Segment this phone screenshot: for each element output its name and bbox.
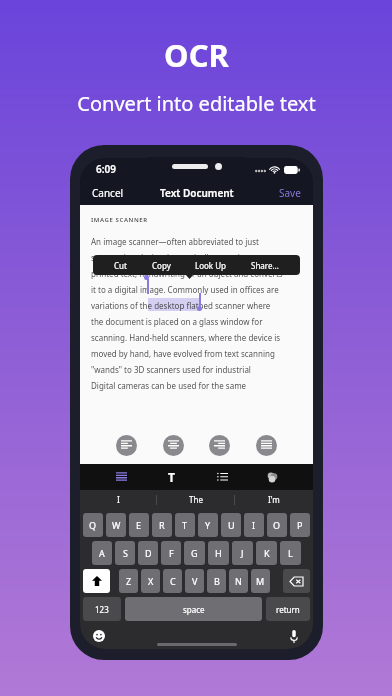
staticText: Z xyxy=(126,575,132,587)
staticText: M xyxy=(256,575,265,587)
button[interactable]: I xyxy=(244,513,264,537)
staticText: 6:09 xyxy=(96,162,116,176)
staticText: P xyxy=(297,519,303,531)
staticText: "wands" to 3D scanners used for industri… xyxy=(91,364,251,375)
button[interactable]: S xyxy=(115,541,135,565)
staticText: I'm xyxy=(268,494,280,505)
button[interactable]: H xyxy=(208,541,229,565)
button[interactable]: E xyxy=(129,513,149,537)
staticText: it to a digital image. Commonly used in … xyxy=(91,284,279,295)
staticText: E xyxy=(136,519,142,531)
staticText: T xyxy=(168,469,175,485)
button[interactable]: Save xyxy=(279,186,301,200)
button[interactable]: The xyxy=(157,490,235,509)
staticText: W xyxy=(112,519,121,531)
staticText: X xyxy=(148,575,154,587)
button[interactable]: Z xyxy=(119,569,138,593)
button[interactable]: V xyxy=(185,569,204,593)
staticText: Q xyxy=(89,519,97,531)
staticText: C xyxy=(170,575,176,587)
button[interactable]: G xyxy=(184,541,205,565)
button[interactable]: K xyxy=(256,541,277,565)
staticText: O xyxy=(273,519,281,531)
button[interactable]: W xyxy=(106,513,126,537)
staticText: U xyxy=(228,519,235,531)
button[interactable]: J xyxy=(232,541,253,565)
button[interactable]: U xyxy=(221,513,241,537)
staticText: B xyxy=(214,575,220,587)
staticText: IMAGE SCANNER xyxy=(91,216,148,224)
button[interactable]: A xyxy=(92,541,112,565)
staticText: D xyxy=(145,547,152,559)
button[interactable]: Colors xyxy=(262,467,282,487)
staticText: 123 xyxy=(95,604,109,615)
staticText: K xyxy=(264,547,270,559)
button[interactable]: R xyxy=(152,513,172,537)
staticText: Share… xyxy=(251,260,279,271)
button[interactable]: O xyxy=(267,513,287,537)
button[interactable]: Share… xyxy=(247,260,283,271)
button[interactable]: N xyxy=(229,569,248,593)
button[interactable]: Cancel xyxy=(92,186,124,200)
button[interactable]: Dictation xyxy=(286,628,302,644)
button[interactable]: 123 xyxy=(83,597,121,621)
staticText: G xyxy=(191,547,198,559)
staticText: Y xyxy=(205,519,211,531)
staticText: OCR xyxy=(164,34,229,76)
staticText: moved by hand, have evolved from text sc… xyxy=(91,348,275,359)
staticText: scanning. Hand-held scanners, where the … xyxy=(91,332,281,343)
button[interactable]: D xyxy=(138,541,158,565)
button[interactable]: P xyxy=(290,513,310,537)
staticText: I xyxy=(117,494,120,505)
button[interactable]: T xyxy=(175,513,195,537)
staticText: H xyxy=(215,547,222,559)
staticText: N xyxy=(235,575,242,587)
button[interactable]: Align right xyxy=(209,435,230,456)
button[interactable]: Justify xyxy=(256,435,277,456)
staticText: scanner, is a device that optically scan… xyxy=(91,252,268,263)
staticText: Convert into editable text xyxy=(77,90,316,117)
staticText: An image scanner—often abbreviated to ju… xyxy=(91,236,259,247)
staticText: A xyxy=(99,547,105,559)
button[interactable]: I'm xyxy=(235,490,313,509)
staticText: S xyxy=(123,547,128,559)
staticText: V xyxy=(192,575,198,587)
staticText: The xyxy=(189,494,203,505)
button[interactable]: Align center xyxy=(163,435,184,456)
button[interactable]: F xyxy=(161,541,181,565)
staticText: L xyxy=(288,547,293,559)
button[interactable]: B xyxy=(207,569,226,593)
staticText: R xyxy=(159,519,165,531)
staticText: variations of the desktop flatbed scanne… xyxy=(91,300,271,311)
button[interactable]: L xyxy=(280,541,301,565)
staticText: F xyxy=(169,547,174,559)
staticText: Digital cameras can be used for the same xyxy=(91,380,247,391)
staticText: Look Up xyxy=(195,260,226,271)
staticText: Cut xyxy=(114,260,127,271)
staticText: printed text, handwriting or an object a… xyxy=(91,268,283,279)
button[interactable]: I xyxy=(80,490,157,509)
button[interactable]: space xyxy=(125,597,262,621)
button[interactable]: C xyxy=(163,569,182,593)
button[interactable]: Look Up xyxy=(191,260,230,271)
staticText: return xyxy=(276,604,300,615)
button[interactable]: Shift xyxy=(83,569,110,593)
button[interactable]: Text style xyxy=(161,467,181,487)
button[interactable]: Emoji xyxy=(91,628,107,644)
button[interactable]: Paragraph xyxy=(111,467,131,487)
button[interactable]: List xyxy=(212,467,232,487)
button[interactable]: return xyxy=(266,597,310,621)
button[interactable]: M xyxy=(251,569,270,593)
button[interactable]: Copy xyxy=(148,260,175,271)
button[interactable]: Q xyxy=(83,513,103,537)
button[interactable]: Cut xyxy=(110,260,131,271)
staticText: Text Document xyxy=(160,186,234,200)
staticText: Copy xyxy=(152,260,171,271)
button[interactable]: Backspace xyxy=(283,569,310,593)
button[interactable]: Align left xyxy=(116,435,137,456)
button[interactable]: Y xyxy=(198,513,218,537)
staticText: J xyxy=(241,547,244,559)
staticText: T xyxy=(182,519,188,531)
button[interactable]: X xyxy=(141,569,160,593)
staticText: I xyxy=(252,519,256,531)
